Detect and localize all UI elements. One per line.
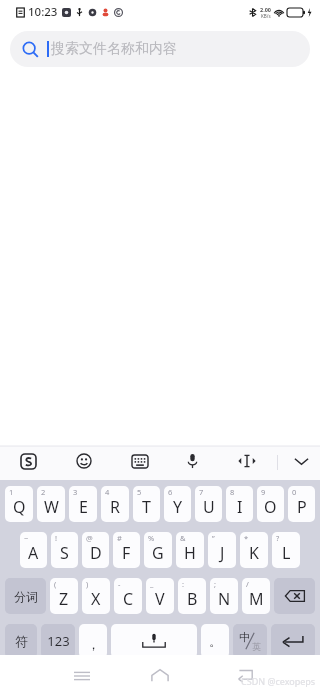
button[interactable]: Menu	[64, 655, 100, 696]
staticText: N	[218, 588, 231, 610]
button[interactable]: -	[114, 578, 142, 614]
button[interactable]: 5	[133, 486, 160, 522]
staticText: Z	[59, 588, 69, 610]
staticText: ”	[212, 533, 215, 543]
staticText: #	[117, 533, 122, 543]
staticText: 6	[168, 487, 173, 497]
staticText: 3	[73, 487, 78, 497]
button[interactable]: Sogou input	[13, 446, 43, 476]
staticText: V	[155, 588, 165, 610]
staticText: :	[182, 579, 185, 589]
staticText: L	[282, 542, 291, 564]
staticText: J	[220, 542, 225, 564]
button[interactable]: ~	[20, 532, 47, 568]
button[interactable]: 搜索文件名称和内容	[10, 31, 310, 67]
staticText: @	[86, 533, 93, 543]
staticText: 7	[199, 487, 204, 497]
staticText: K	[249, 542, 259, 564]
staticText: U	[203, 496, 215, 518]
staticText: KB/s	[261, 13, 271, 19]
staticText: -	[118, 579, 121, 589]
staticText: ，	[87, 636, 100, 652]
staticText: _	[150, 579, 154, 589]
staticText: P	[297, 496, 307, 518]
staticText: 5	[137, 487, 142, 497]
staticText: G	[152, 542, 164, 564]
staticText: C	[123, 588, 134, 610]
button[interactable]: ?	[272, 532, 300, 568]
staticText: O	[264, 496, 277, 518]
button[interactable]: Home	[142, 655, 178, 696]
button[interactable]: 7	[195, 486, 222, 522]
staticText: ;	[214, 579, 217, 589]
staticText: (	[54, 579, 57, 589]
staticText: !	[55, 533, 58, 543]
button[interactable]: 分词	[5, 578, 46, 614]
staticText: CSDN @cexopeps	[241, 675, 316, 687]
staticText: E	[79, 496, 88, 518]
staticText: 8	[230, 487, 235, 497]
staticText: 1	[9, 487, 14, 497]
staticText: I	[237, 496, 243, 518]
button[interactable]: Backspace	[274, 578, 315, 614]
button[interactable]: Period	[201, 624, 229, 658]
staticText: 英	[252, 641, 261, 652]
button[interactable]: Voice input	[177, 446, 207, 476]
staticText: %	[148, 533, 155, 543]
staticText: D	[90, 542, 102, 564]
button[interactable]: Chinese English toggle	[233, 624, 267, 658]
staticText: 2	[41, 487, 46, 497]
button[interactable]: 4	[101, 486, 129, 522]
button[interactable]: &	[176, 532, 204, 568]
button[interactable]: _	[146, 578, 174, 614]
staticText: F	[122, 542, 131, 564]
staticText: S	[60, 542, 69, 564]
staticText: ?	[276, 533, 280, 543]
button[interactable]: 9	[257, 486, 284, 522]
staticText: 10:23	[28, 4, 58, 20]
button[interactable]: %	[144, 532, 172, 568]
staticText: 9	[261, 487, 266, 497]
button[interactable]: 0	[288, 486, 315, 522]
staticText: 2.00	[260, 6, 271, 13]
button[interactable]: @	[82, 532, 109, 568]
button[interactable]: :	[178, 578, 206, 614]
staticText: Q	[13, 496, 26, 518]
button[interactable]: 1	[5, 486, 33, 522]
button[interactable]: Emoji	[69, 446, 99, 476]
button[interactable]: Space	[111, 624, 197, 658]
staticText: 4	[105, 487, 110, 497]
staticText: ~	[24, 533, 29, 543]
button[interactable]: Keyboard layout	[125, 446, 155, 476]
button[interactable]: 8	[226, 486, 253, 522]
staticText: /	[246, 579, 249, 589]
button[interactable]: 符	[5, 624, 37, 658]
button[interactable]: *	[240, 532, 268, 568]
button[interactable]: #	[113, 532, 140, 568]
button[interactable]: 2	[37, 486, 65, 522]
staticText: X	[91, 588, 101, 610]
button[interactable]: Enter	[271, 624, 315, 658]
staticText: T	[142, 496, 151, 518]
staticText: 0	[292, 487, 297, 497]
button[interactable]: Move cursor	[232, 446, 262, 476]
button[interactable]: 6	[164, 486, 191, 522]
staticText: *	[244, 533, 249, 543]
button[interactable]: )	[82, 578, 110, 614]
button[interactable]: (	[50, 578, 78, 614]
button[interactable]: /	[242, 578, 270, 614]
button[interactable]: !	[51, 532, 78, 568]
staticText: 符	[15, 633, 28, 649]
staticText: 。	[209, 633, 222, 649]
staticText: 搜索文件名称和内容	[51, 40, 177, 58]
button[interactable]: ”	[208, 532, 236, 568]
button[interactable]: ;	[210, 578, 238, 614]
button[interactable]: 123	[41, 624, 75, 658]
staticText: R	[110, 496, 120, 518]
button[interactable]: 3	[69, 486, 97, 522]
staticText: M	[249, 588, 264, 610]
button[interactable]: Comma	[79, 624, 107, 658]
staticText: 分词	[14, 589, 38, 604]
button[interactable]: Back	[227, 655, 263, 696]
button[interactable]: Hide keyboard	[286, 446, 316, 476]
